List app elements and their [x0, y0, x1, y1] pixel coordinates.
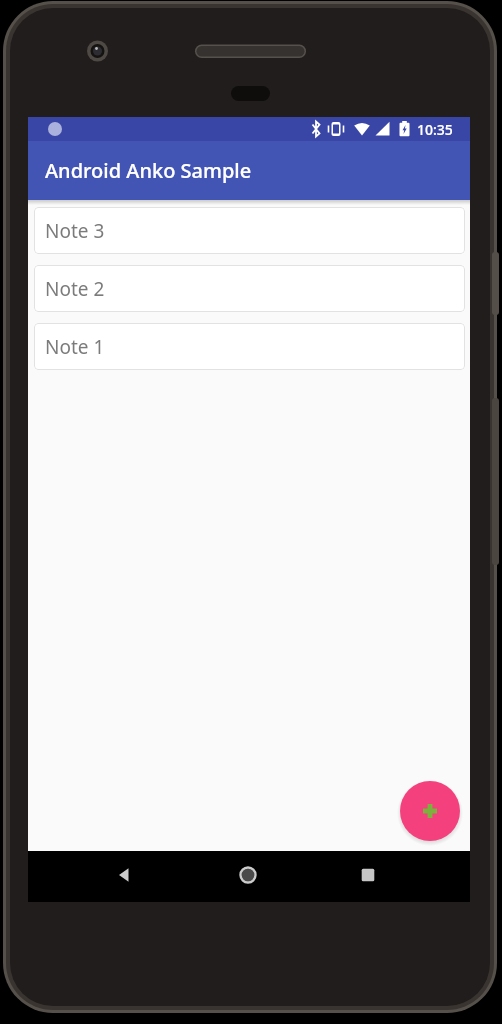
button[interactable] [344, 851, 392, 902]
staticText: 10:35 [417, 120, 453, 139]
staticText: Note 3 [45, 218, 105, 244]
button[interactable] [100, 851, 148, 902]
button[interactable]: Note 3 [34, 207, 465, 254]
button[interactable] [224, 851, 272, 902]
staticText: Note 2 [45, 276, 105, 302]
button[interactable]: Note 2 [34, 265, 465, 312]
staticText: Android Anko Sample [45, 157, 252, 184]
staticText: Note 1 [45, 334, 105, 360]
button[interactable] [400, 781, 460, 841]
button[interactable]: Note 1 [34, 323, 465, 370]
